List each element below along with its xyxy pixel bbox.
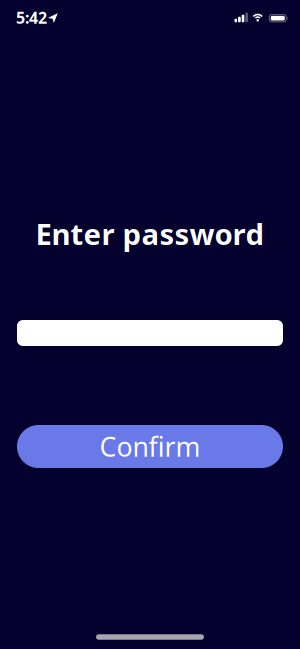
staticText: Enter password	[35, 214, 264, 253]
staticText: Confirm	[99, 429, 200, 464]
button[interactable]: Confirm	[17, 425, 283, 468]
staticText: 5:42	[16, 7, 47, 28]
